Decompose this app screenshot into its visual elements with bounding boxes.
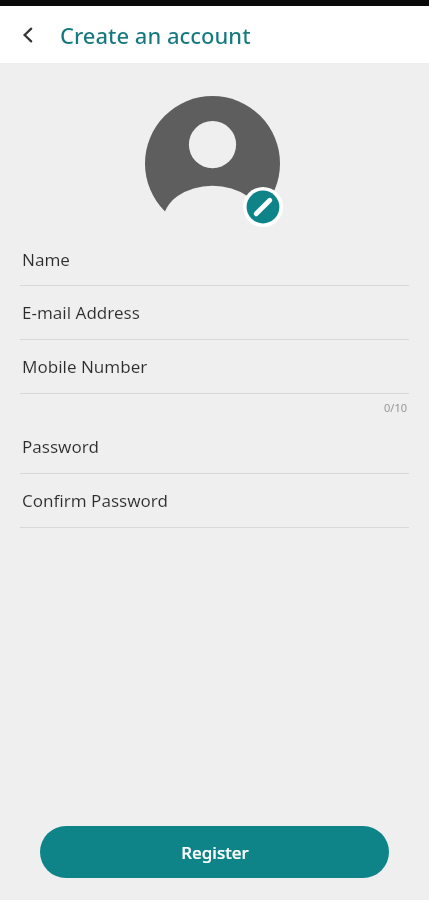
button[interactable]: Change profile photo — [145, 96, 285, 233]
button[interactable]: Confirm Password — [0, 474, 429, 528]
staticText: Password — [22, 435, 99, 458]
staticText: 0/10 — [384, 400, 407, 415]
button[interactable]: Mobile Number — [0, 340, 429, 420]
button[interactable]: Back — [6, 13, 50, 57]
staticText: Register — [181, 841, 249, 864]
staticText: E-mail Address — [22, 301, 140, 324]
button[interactable]: E-mail Address — [0, 286, 429, 340]
button[interactable]: Register — [40, 826, 389, 878]
button[interactable]: Password — [0, 420, 429, 474]
staticText: Mobile Number — [22, 355, 148, 378]
staticText: Confirm Password — [22, 489, 168, 512]
staticText: Create an account — [60, 20, 251, 50]
button[interactable]: Name — [0, 233, 429, 286]
staticText: Name — [22, 248, 70, 271]
